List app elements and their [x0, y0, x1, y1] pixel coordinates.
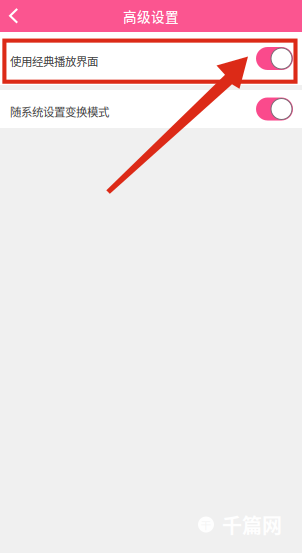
button[interactable]: 使用经典播放界面	[0, 32, 302, 85]
staticText: 干	[200, 517, 211, 532]
staticText: 高级设置	[123, 6, 179, 26]
button[interactable]: 随系统设置变换模式	[0, 90, 302, 128]
button[interactable]: Back	[0, 0, 27, 32]
staticText: 千篇网	[222, 510, 282, 539]
staticText: 随系统设置变换模式	[10, 103, 109, 120]
staticText: 使用经典播放界面	[10, 53, 98, 69]
